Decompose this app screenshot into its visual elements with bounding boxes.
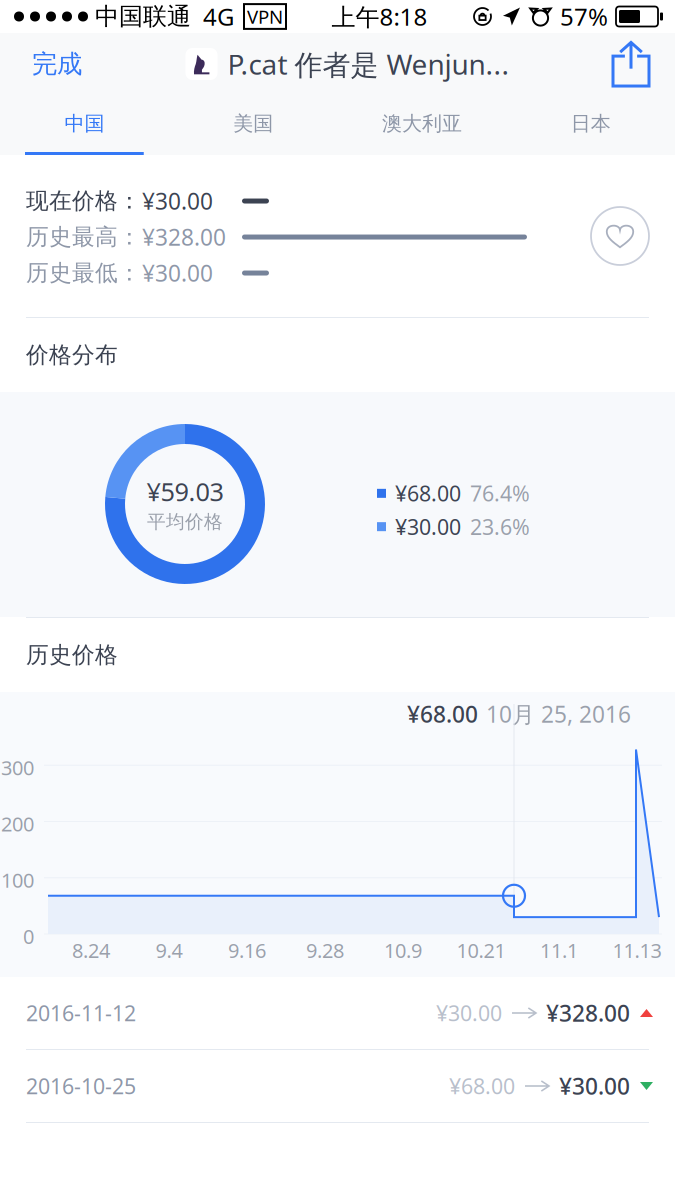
staticText: 完成 bbox=[32, 48, 82, 79]
staticText: 10月 25, 2016 bbox=[486, 699, 631, 729]
staticText: ¥30.00 bbox=[395, 512, 461, 541]
staticText: ¥30.00 bbox=[559, 1071, 630, 1101]
staticText: ¥68.00 bbox=[449, 1072, 515, 1100]
staticText: ¥68.00 bbox=[395, 479, 461, 507]
staticText: 57% bbox=[560, 1, 608, 32]
staticText: 100 bbox=[1, 867, 34, 893]
staticText: 0 bbox=[23, 923, 34, 950]
staticText: 76.4% bbox=[470, 479, 530, 507]
staticText: ¥30.00 bbox=[142, 258, 213, 288]
staticText: 10.21 bbox=[456, 937, 505, 964]
button[interactable]: Add to favourites bbox=[583, 201, 675, 271]
staticText: 美国 bbox=[233, 111, 273, 136]
staticText: 上午8:18 bbox=[331, 1, 427, 32]
staticText: 平均价格 bbox=[147, 510, 223, 533]
staticText: 2016-11-12 bbox=[26, 999, 136, 1027]
staticText: 历史最高： bbox=[26, 223, 141, 251]
staticText: ¥328.00 bbox=[142, 222, 226, 252]
button[interactable]: 2016-10-25 bbox=[0, 1050, 675, 1123]
staticText: ¥59.03 bbox=[146, 475, 223, 508]
staticText: ¥30.00 bbox=[142, 186, 213, 216]
staticText: VPN bbox=[247, 4, 283, 29]
staticText: ¥68.00 bbox=[407, 699, 478, 729]
staticText: 历史最低： bbox=[26, 259, 141, 287]
staticText: 10.9 bbox=[384, 937, 422, 964]
staticText: 价格分布 bbox=[26, 341, 118, 369]
staticText: 11.1 bbox=[540, 937, 578, 964]
staticText: 澳大利亚 bbox=[382, 111, 462, 136]
button[interactable]: 中国 bbox=[0, 95, 169, 155]
button[interactable]: 完成 bbox=[0, 33, 100, 95]
staticText: 300 bbox=[1, 754, 34, 781]
button[interactable]: 澳大利亚 bbox=[337, 95, 506, 155]
button[interactable]: 日本 bbox=[506, 95, 675, 155]
button[interactable]: Share bbox=[595, 33, 675, 95]
staticText: 日本 bbox=[571, 111, 611, 136]
staticText: 中国联通 bbox=[95, 2, 191, 31]
staticText: ¥328.00 bbox=[546, 998, 630, 1028]
staticText: 23.6% bbox=[470, 512, 530, 541]
staticText: 2016-10-25 bbox=[26, 1072, 136, 1100]
button[interactable]: 2016-11-12 bbox=[0, 977, 675, 1050]
staticText: 8.24 bbox=[72, 937, 110, 964]
staticText: 现在价格： bbox=[26, 187, 141, 215]
staticText: 4G bbox=[203, 1, 234, 32]
staticText: 200 bbox=[1, 810, 34, 837]
staticText: 9.16 bbox=[228, 937, 266, 964]
button[interactable]: 美国 bbox=[169, 95, 338, 155]
staticText: P.cat 作者是 Wenjun... bbox=[227, 45, 509, 83]
staticText: 中国 bbox=[64, 111, 104, 136]
staticText: 9.4 bbox=[155, 937, 182, 964]
staticText: ¥30.00 bbox=[436, 999, 502, 1027]
staticText: 11.13 bbox=[612, 937, 661, 964]
staticText: 9.28 bbox=[306, 937, 344, 964]
staticText: 历史价格 bbox=[26, 641, 118, 669]
